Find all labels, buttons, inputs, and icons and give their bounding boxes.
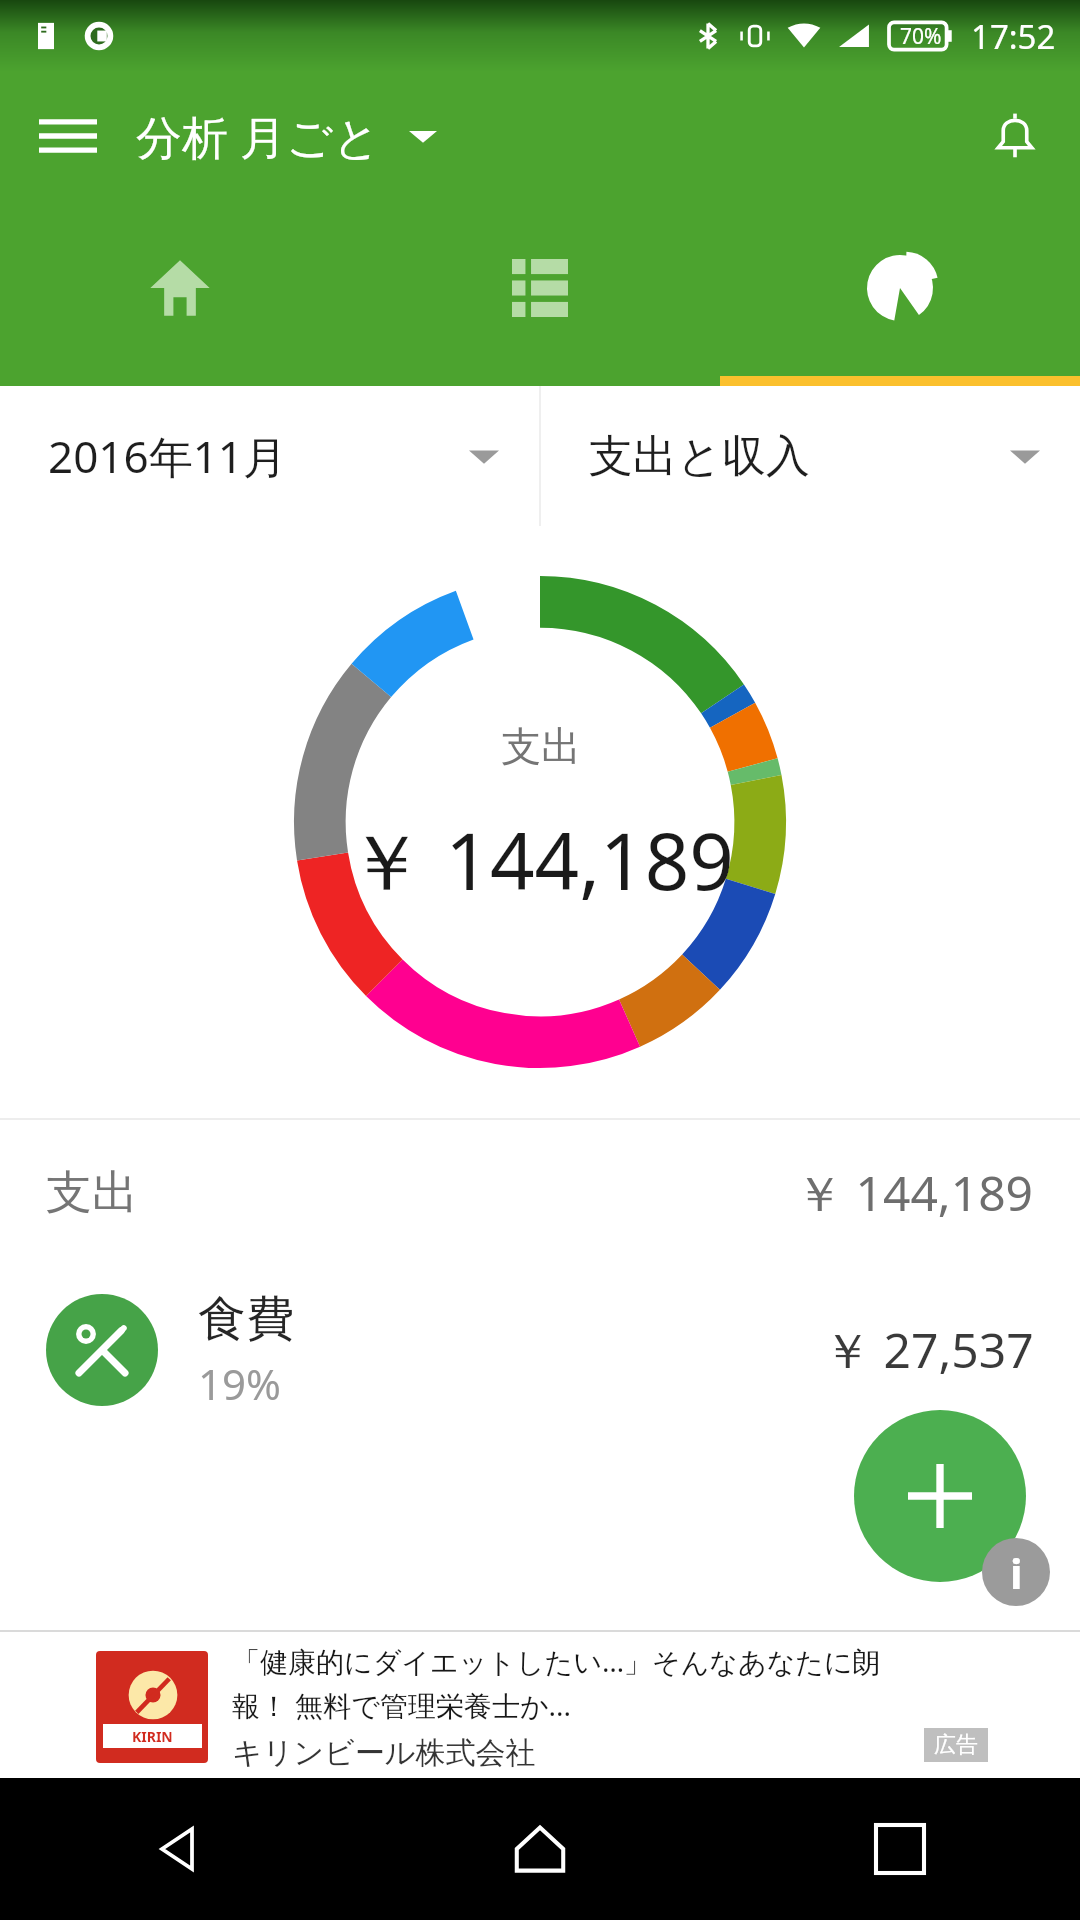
button[interactable]: Home bbox=[360, 1778, 720, 1920]
staticText: ￥ 144,189 bbox=[795, 1160, 1034, 1226]
staticText: 70% bbox=[900, 22, 942, 51]
button[interactable]: Back bbox=[0, 1778, 360, 1920]
staticText: 支出 bbox=[46, 1164, 138, 1222]
button[interactable]: Info bbox=[982, 1538, 1050, 1606]
staticText: KIRIN bbox=[132, 1727, 173, 1746]
staticText: i bbox=[1010, 1544, 1023, 1601]
button[interactable]: Analysis bbox=[720, 200, 1080, 376]
button[interactable]: 支出 bbox=[0, 1120, 1080, 1266]
button[interactable]: Notifications bbox=[950, 72, 1080, 200]
button[interactable]: Add bbox=[854, 1410, 1026, 1582]
button[interactable]: 2016年11月 bbox=[0, 386, 539, 526]
button[interactable]: 食費 bbox=[0, 1266, 1080, 1434]
staticText: 分析 月ごと bbox=[136, 105, 381, 168]
button[interactable]: List bbox=[360, 200, 720, 376]
staticText: ￥ 27,537 bbox=[823, 1317, 1034, 1383]
staticText: 19% bbox=[198, 1355, 281, 1412]
staticText: 支出と収入 bbox=[589, 429, 811, 484]
staticText: 支出 bbox=[501, 721, 581, 771]
staticText: ￥ 144,189 bbox=[347, 807, 734, 914]
button[interactable]: Recents bbox=[720, 1778, 1080, 1920]
staticText: 食費 bbox=[198, 1289, 294, 1349]
staticText: 広告 bbox=[934, 1731, 978, 1759]
staticText: 「健康的にダイエットしたい…」そんなあなたに朗 bbox=[232, 1642, 881, 1680]
staticText: キリンビール株式会社 bbox=[232, 1734, 536, 1772]
staticText: 2016年11月 bbox=[48, 426, 288, 486]
button[interactable]: Menu bbox=[0, 72, 136, 200]
button[interactable]: 支出と収入 bbox=[541, 386, 1080, 526]
button[interactable]: KIRIN bbox=[0, 1630, 1080, 1778]
staticText: 17:52 bbox=[971, 14, 1056, 59]
button[interactable]: 分析 月ごと bbox=[136, 72, 950, 200]
button[interactable]: Home bbox=[0, 200, 360, 376]
staticText: 報！ 無料で管理栄養士か... bbox=[232, 1686, 572, 1724]
